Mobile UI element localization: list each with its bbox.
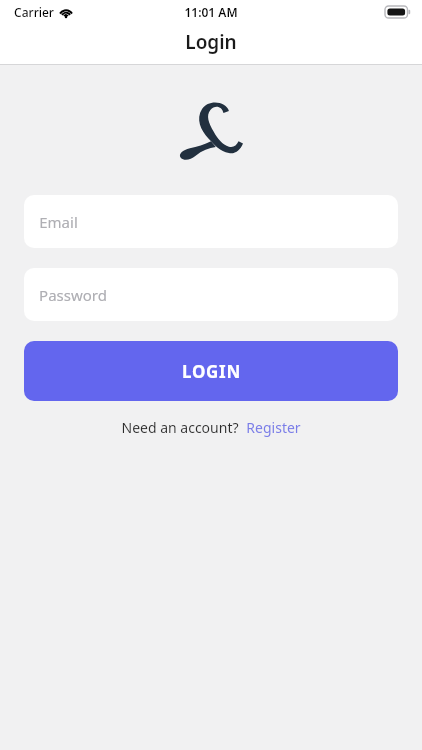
button[interactable]: Email: [24, 195, 398, 248]
staticText: 11:01 AM: [184, 4, 238, 20]
button[interactable]: Register: [245, 416, 302, 439]
other: Battery full: [385, 6, 410, 18]
button[interactable]: LOGIN: [24, 341, 398, 401]
staticText: Password: [39, 285, 107, 305]
staticText: LOGIN: [182, 360, 241, 383]
staticText: Register: [246, 418, 301, 437]
staticText: Need an account?: [121, 418, 239, 437]
button[interactable]: Password: [24, 268, 398, 321]
staticText: Carrier: [14, 4, 54, 20]
staticText: Login: [185, 29, 237, 55]
staticText: Email: [39, 212, 78, 232]
other: Wi-Fi signal: [59, 7, 73, 18]
